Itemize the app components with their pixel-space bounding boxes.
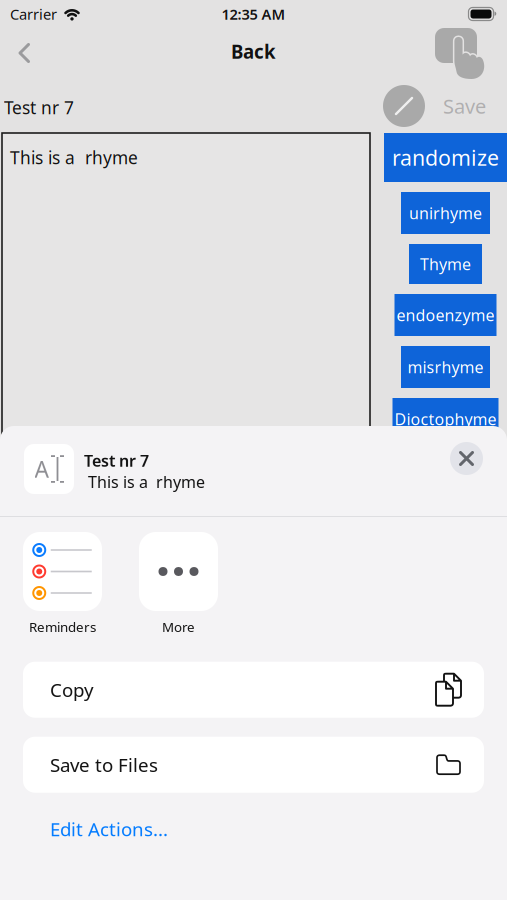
staticText: Reminders bbox=[29, 618, 96, 636]
staticText: unirhyme bbox=[409, 202, 482, 224]
button[interactable]: Reminders bbox=[23, 532, 102, 636]
staticText: Save bbox=[443, 93, 486, 119]
button[interactable]: More bbox=[139, 532, 218, 636]
button[interactable]: randomize bbox=[384, 133, 507, 182]
staticText: Save to Files bbox=[50, 752, 158, 777]
staticText: Carrier bbox=[10, 4, 57, 24]
button[interactable]: Copy bbox=[23, 662, 484, 718]
staticText: misrhyme bbox=[407, 356, 483, 378]
staticText: Edit Actions... bbox=[50, 817, 168, 841]
staticText: Copy bbox=[50, 677, 94, 702]
button[interactable]: Tap gesture bbox=[435, 28, 491, 80]
button[interactable]: Edit Actions... bbox=[50, 817, 168, 841]
button[interactable]: misrhyme bbox=[401, 346, 490, 388]
button[interactable]: Save bbox=[383, 85, 486, 127]
button[interactable]: Thyme bbox=[409, 244, 482, 284]
button[interactable]: Back bbox=[0, 28, 31, 63]
button[interactable]: unirhyme bbox=[401, 192, 490, 234]
staticText: Test nr 7 bbox=[4, 96, 74, 119]
button[interactable]: Save to Files bbox=[23, 737, 484, 793]
button[interactable]: Close bbox=[450, 442, 483, 475]
staticText: Test nr 7 bbox=[84, 450, 149, 471]
staticText: endoenzyme bbox=[396, 304, 494, 326]
staticText: Thyme bbox=[420, 253, 471, 275]
button[interactable]: endoenzyme bbox=[394, 294, 496, 336]
staticText: A bbox=[34, 454, 48, 484]
staticText: This is a rhyme bbox=[84, 471, 205, 492]
staticText: This is a rhyme bbox=[10, 146, 138, 169]
staticText: More bbox=[162, 618, 195, 636]
staticText: 12:35 AM bbox=[221, 4, 285, 24]
staticText: Back bbox=[231, 39, 276, 64]
staticText: randomize bbox=[392, 143, 499, 172]
staticText: Dioctophyme bbox=[394, 408, 496, 430]
button[interactable]: Dioctophyme bbox=[392, 398, 498, 440]
